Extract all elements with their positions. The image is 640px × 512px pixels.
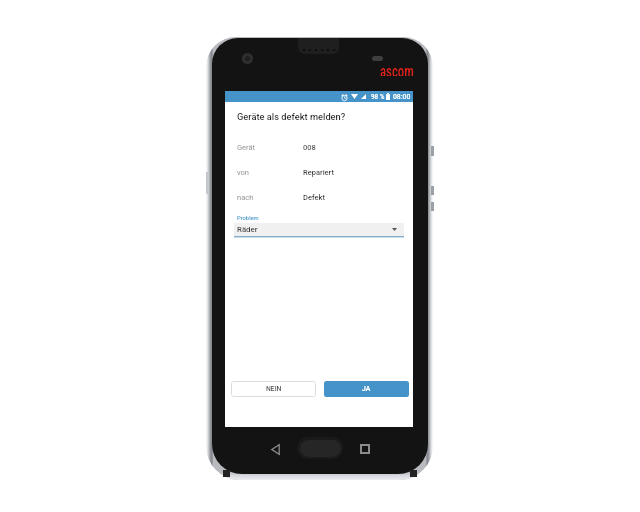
- staticText: 08:00: [393, 93, 411, 101]
- button[interactable]: NEIN: [231, 381, 316, 397]
- staticText: 008: [303, 143, 316, 152]
- staticText: 98 %: [371, 93, 385, 100]
- staticText: ascom: [380, 62, 414, 76]
- button[interactable]: Back: [262, 436, 288, 462]
- staticText: Repariert: [303, 168, 334, 177]
- staticText: Problem: [237, 215, 259, 222]
- staticText: von: [237, 168, 249, 177]
- button[interactable]: Problem: [234, 215, 404, 238]
- button[interactable]: JA: [324, 381, 409, 397]
- staticText: Gerät: [237, 143, 256, 152]
- staticText: Räder: [237, 225, 258, 234]
- button[interactable]: Home: [297, 437, 343, 459]
- button[interactable]: Recents: [352, 436, 378, 462]
- staticText: JA: [362, 385, 371, 393]
- staticText: nach: [237, 193, 254, 202]
- staticText: Defekt: [303, 193, 325, 202]
- staticText: Geräte als defekt melden?: [237, 111, 346, 122]
- staticText: NEIN: [266, 385, 282, 393]
